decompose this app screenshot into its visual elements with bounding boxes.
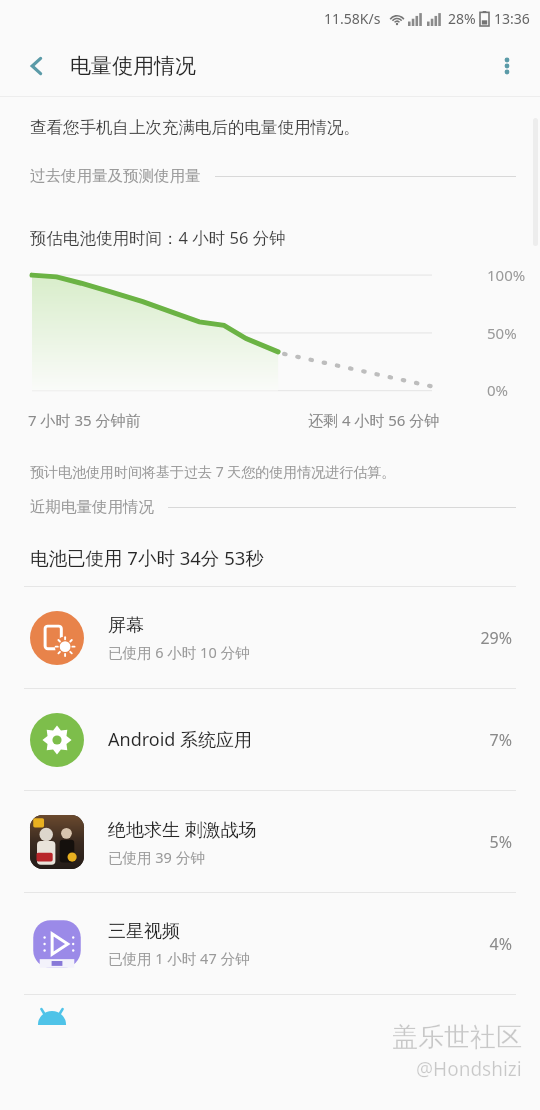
staticText: 还剩 4 小时 56 分钟 bbox=[308, 410, 440, 430]
staticText: 预估电池使用时间：4 小时 56 分钟 bbox=[30, 226, 286, 249]
staticText: 电池已使用 7小时 34分 53秒 bbox=[30, 545, 264, 570]
staticText: 屏幕 bbox=[108, 614, 144, 637]
staticText: 4% bbox=[489, 933, 512, 955]
staticText: 绝地求生 刺激战场 bbox=[108, 817, 257, 842]
staticText: 查看您手机自上次充满电后的电量使用情况。 bbox=[30, 117, 360, 138]
staticText: 29% bbox=[480, 627, 512, 649]
staticText: 13:36 bbox=[494, 9, 530, 28]
staticText: 盖乐世社区 bbox=[392, 1021, 522, 1054]
button[interactable]: More options bbox=[484, 43, 530, 89]
staticText: 0% bbox=[487, 380, 509, 400]
staticText: 已使用 39 分钟 bbox=[108, 847, 205, 867]
staticText: Android 系统应用 bbox=[108, 727, 253, 752]
staticText: 28% bbox=[448, 9, 476, 28]
staticText: 过去使用量及预测使用量 bbox=[30, 166, 201, 186]
staticText: 三星视频 bbox=[108, 920, 180, 943]
staticText: 已使用 1 小时 47 分钟 bbox=[108, 948, 250, 968]
staticText: 电量使用情况 bbox=[70, 53, 196, 79]
staticText: 50% bbox=[487, 323, 517, 343]
button[interactable]: 三星视频 bbox=[0, 893, 540, 994]
staticText: 11.58K/s bbox=[324, 9, 381, 28]
staticText: 7% bbox=[489, 729, 512, 751]
button[interactable]: Back bbox=[14, 43, 60, 89]
staticText: 预计电池使用时间将基于过去 7 天您的使用情况进行估算。 bbox=[30, 462, 396, 481]
staticText: 100% bbox=[487, 265, 526, 285]
staticText: 5% bbox=[489, 831, 512, 853]
button[interactable]: Android 系统应用 bbox=[0, 689, 540, 790]
button[interactable]: 绝地求生 刺激战场 bbox=[0, 791, 540, 892]
staticText: @Hondshizi bbox=[416, 1056, 522, 1082]
staticText: 7 小时 35 分钟前 bbox=[28, 410, 141, 430]
staticText: 近期电量使用情况 bbox=[30, 497, 154, 517]
button[interactable]: 屏幕 bbox=[0, 587, 540, 688]
staticText: 已使用 6 小时 10 分钟 bbox=[108, 642, 250, 662]
